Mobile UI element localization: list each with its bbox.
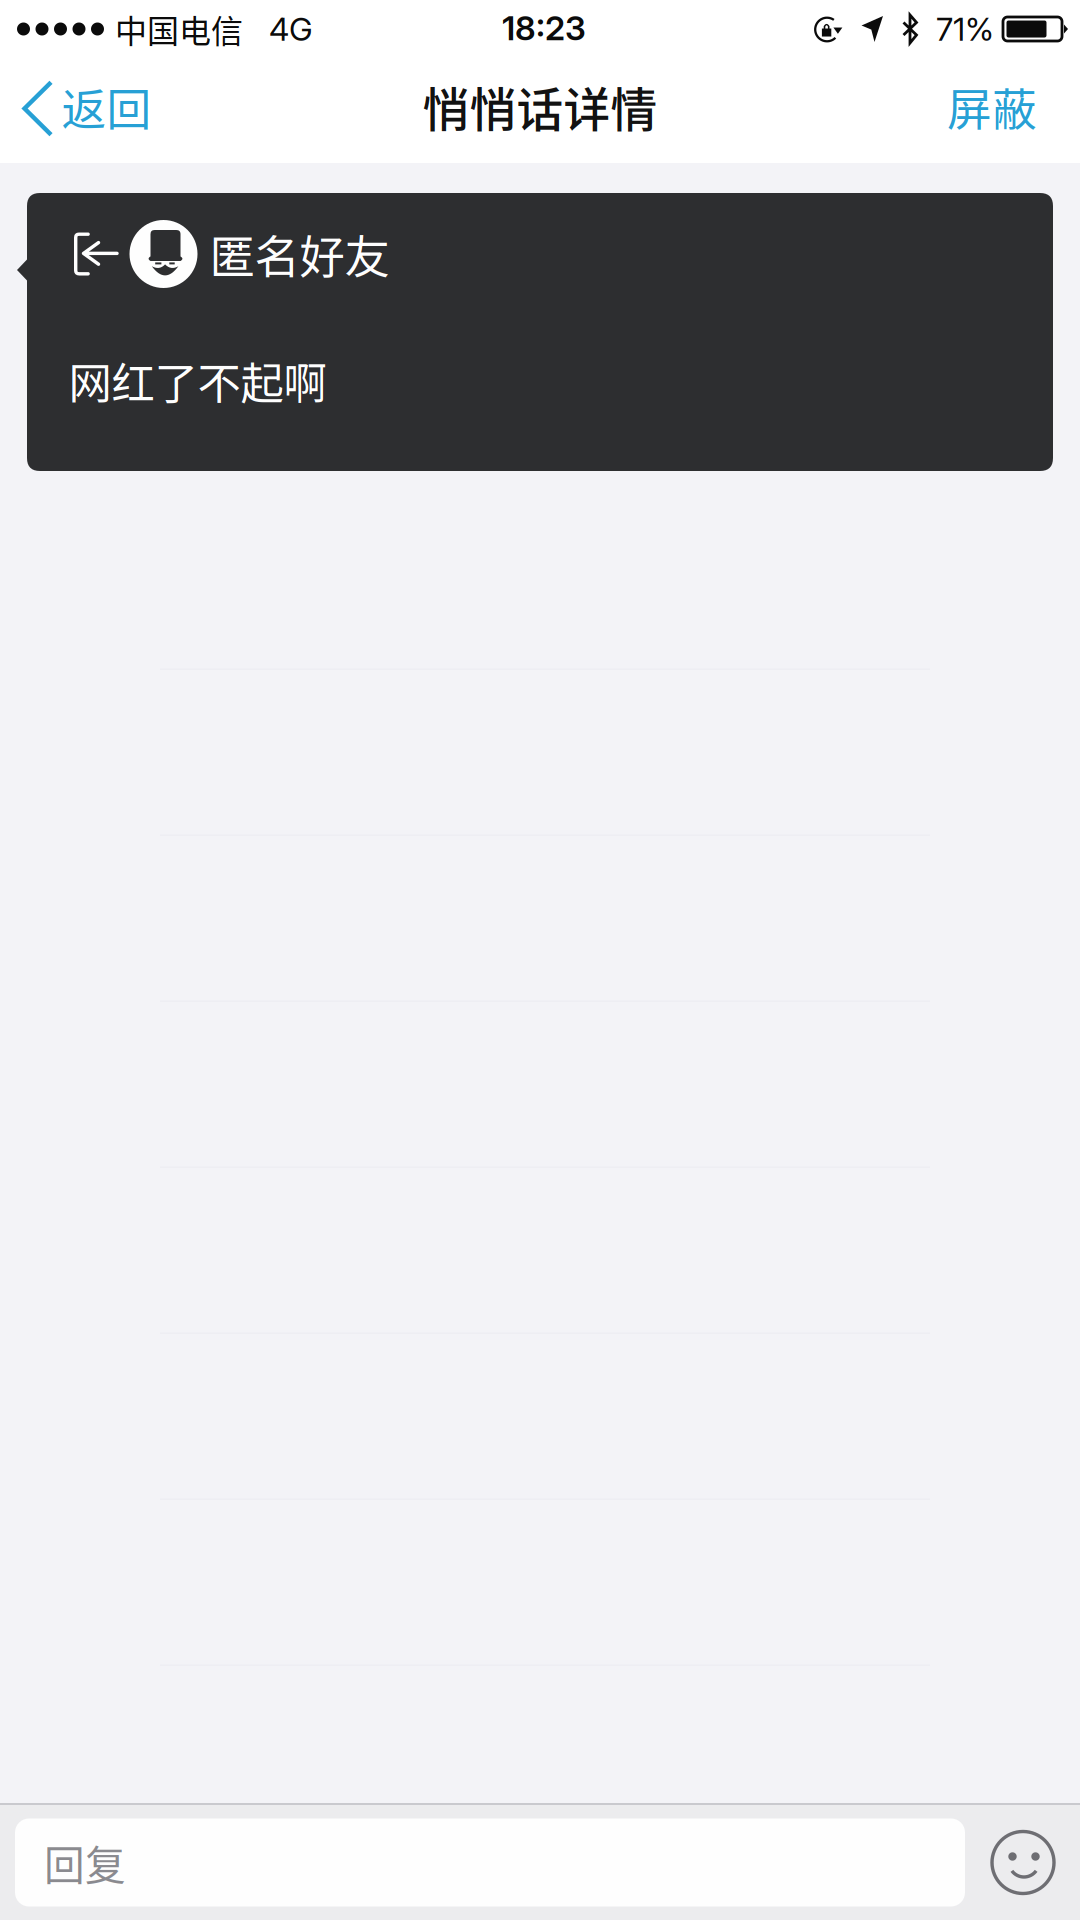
staticText: 回复 — [44, 1833, 126, 1892]
staticText: 4G — [269, 10, 313, 48]
button[interactable]: 返回 — [0, 58, 177, 163]
staticText: 返回 — [61, 74, 151, 139]
button[interactable]: 回复 — [15, 1818, 965, 1906]
staticText: 屏蔽 — [947, 74, 1037, 139]
staticText: 18:23 — [502, 8, 586, 48]
button[interactable]: 屏蔽 — [921, 58, 1080, 163]
staticText: 悄悄话详情 — [422, 73, 657, 140]
staticText: 匿名好友 — [209, 221, 389, 287]
staticText: 中国电信 — [115, 6, 243, 52]
button[interactable]: Emoji keyboard — [992, 1831, 1054, 1893]
staticText: 网红了不起啊 — [68, 349, 326, 412]
staticText: 71% — [936, 10, 994, 48]
